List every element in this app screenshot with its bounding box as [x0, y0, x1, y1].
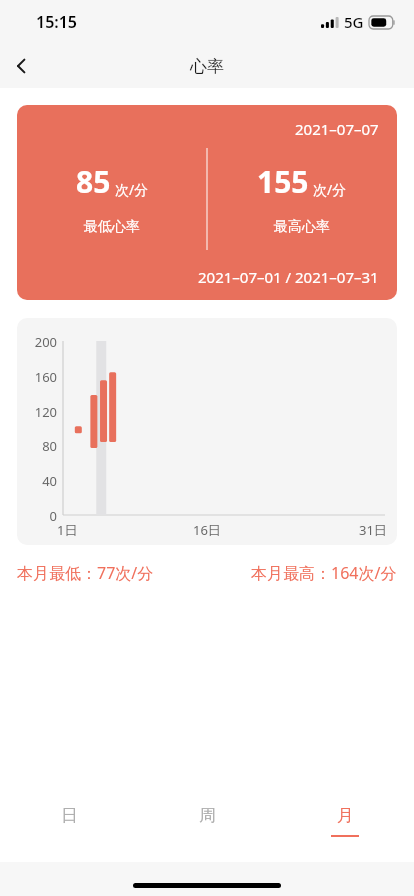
staticText: 日 [61, 805, 78, 826]
staticText: 心率 [190, 56, 224, 77]
button[interactable]: 月 [276, 780, 414, 862]
staticText: 最高心率 [274, 218, 330, 236]
staticText: 80 [17, 437, 57, 455]
staticText: 最低心率 [84, 218, 140, 236]
staticText: 5G [344, 12, 364, 32]
staticText: 0 [17, 507, 57, 525]
staticText: 2021–07–01 / 2021–07–31 [198, 267, 379, 287]
staticText: 15:15 [36, 11, 78, 33]
staticText: 本月最高：164次/分 [251, 562, 397, 584]
staticText: 2021–07–07 [295, 119, 379, 139]
button[interactable]: 日 [0, 780, 138, 862]
staticText: 周 [199, 805, 216, 826]
staticText: 16日 [193, 521, 221, 539]
staticText: 31日 [359, 521, 387, 539]
staticText: 1日 [57, 521, 78, 539]
staticText: 40 [17, 472, 57, 490]
staticText: 200 [17, 333, 57, 351]
button[interactable]: Back [0, 44, 44, 88]
staticText: 本月最低：77次/分 [17, 562, 154, 584]
staticText: 160 [17, 368, 57, 386]
staticText: 月 [337, 805, 354, 826]
button[interactable]: 2021–07–07 [17, 105, 397, 300]
staticText: 155 [257, 161, 309, 202]
button[interactable]: 周 [138, 780, 276, 862]
staticText: 次/分 [115, 180, 149, 199]
staticText: 85 [76, 161, 111, 202]
staticText: 次/分 [313, 180, 347, 199]
staticText: 120 [17, 403, 57, 421]
